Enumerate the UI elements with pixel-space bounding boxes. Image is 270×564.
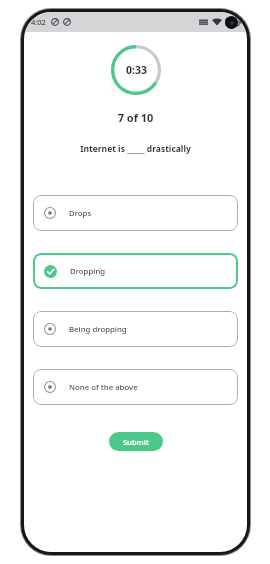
- button[interactable]: Drops: [33, 195, 238, 231]
- staticText: Being dropping: [69, 324, 127, 335]
- staticText: Dropping: [70, 266, 106, 277]
- staticText: 7 of 10: [24, 110, 247, 125]
- staticText: 4:02: [31, 17, 46, 27]
- staticText: None of the above: [69, 382, 138, 393]
- staticText: Submit: [123, 437, 149, 447]
- button[interactable]: Being dropping: [33, 311, 238, 347]
- staticText: Internet is _____ drastically: [24, 143, 247, 155]
- button[interactable]: Submit: [109, 432, 163, 451]
- button[interactable]: None of the above: [33, 369, 238, 405]
- staticText: 0:33: [126, 63, 147, 77]
- button[interactable]: Dropping: [33, 253, 238, 289]
- staticText: Drops: [69, 208, 92, 219]
